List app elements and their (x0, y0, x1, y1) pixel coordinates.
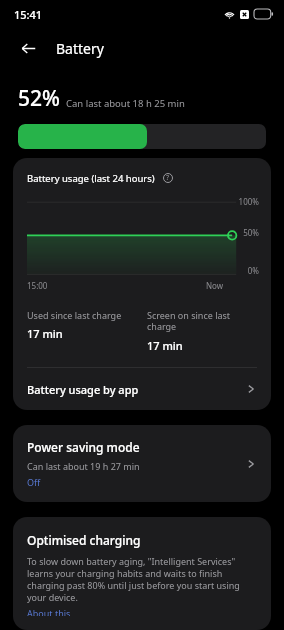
staticText: 50% (243, 227, 259, 238)
staticText: 15:00 (27, 280, 48, 291)
staticText: Power saving mode (27, 439, 140, 455)
staticText: ? (166, 173, 170, 183)
staticText: Screen on since last charge (147, 309, 257, 333)
staticText: 0% (247, 265, 259, 276)
button[interactable]: Power saving mode (13, 425, 271, 502)
button[interactable]: More information (161, 171, 175, 185)
staticText: Can last about 18 h 25 min (66, 97, 185, 110)
staticText: Can last about 19 h 27 min (27, 460, 140, 472)
button[interactable]: Optimised charging (13, 517, 271, 630)
staticText: Off (27, 476, 41, 488)
staticText: 17 min (27, 326, 63, 341)
button[interactable]: Battery usage by app (13, 368, 271, 410)
staticText: Used since last charge (27, 309, 122, 321)
staticText: Battery (56, 39, 104, 58)
staticText: To slow down battery aging, "Intelligent… (27, 555, 257, 603)
staticText: Optimised charging (27, 532, 141, 548)
staticText: 100% (238, 196, 259, 207)
staticText: Battery usage by app (27, 382, 139, 397)
button[interactable]: Back (14, 34, 42, 62)
staticText: Now (206, 280, 224, 291)
staticText: Battery usage (last 24 hours) (27, 172, 155, 185)
staticText: 15:41 (14, 7, 43, 22)
staticText: 52% (18, 84, 60, 113)
staticText: About this (27, 607, 71, 616)
staticText: 17 min (147, 338, 183, 353)
